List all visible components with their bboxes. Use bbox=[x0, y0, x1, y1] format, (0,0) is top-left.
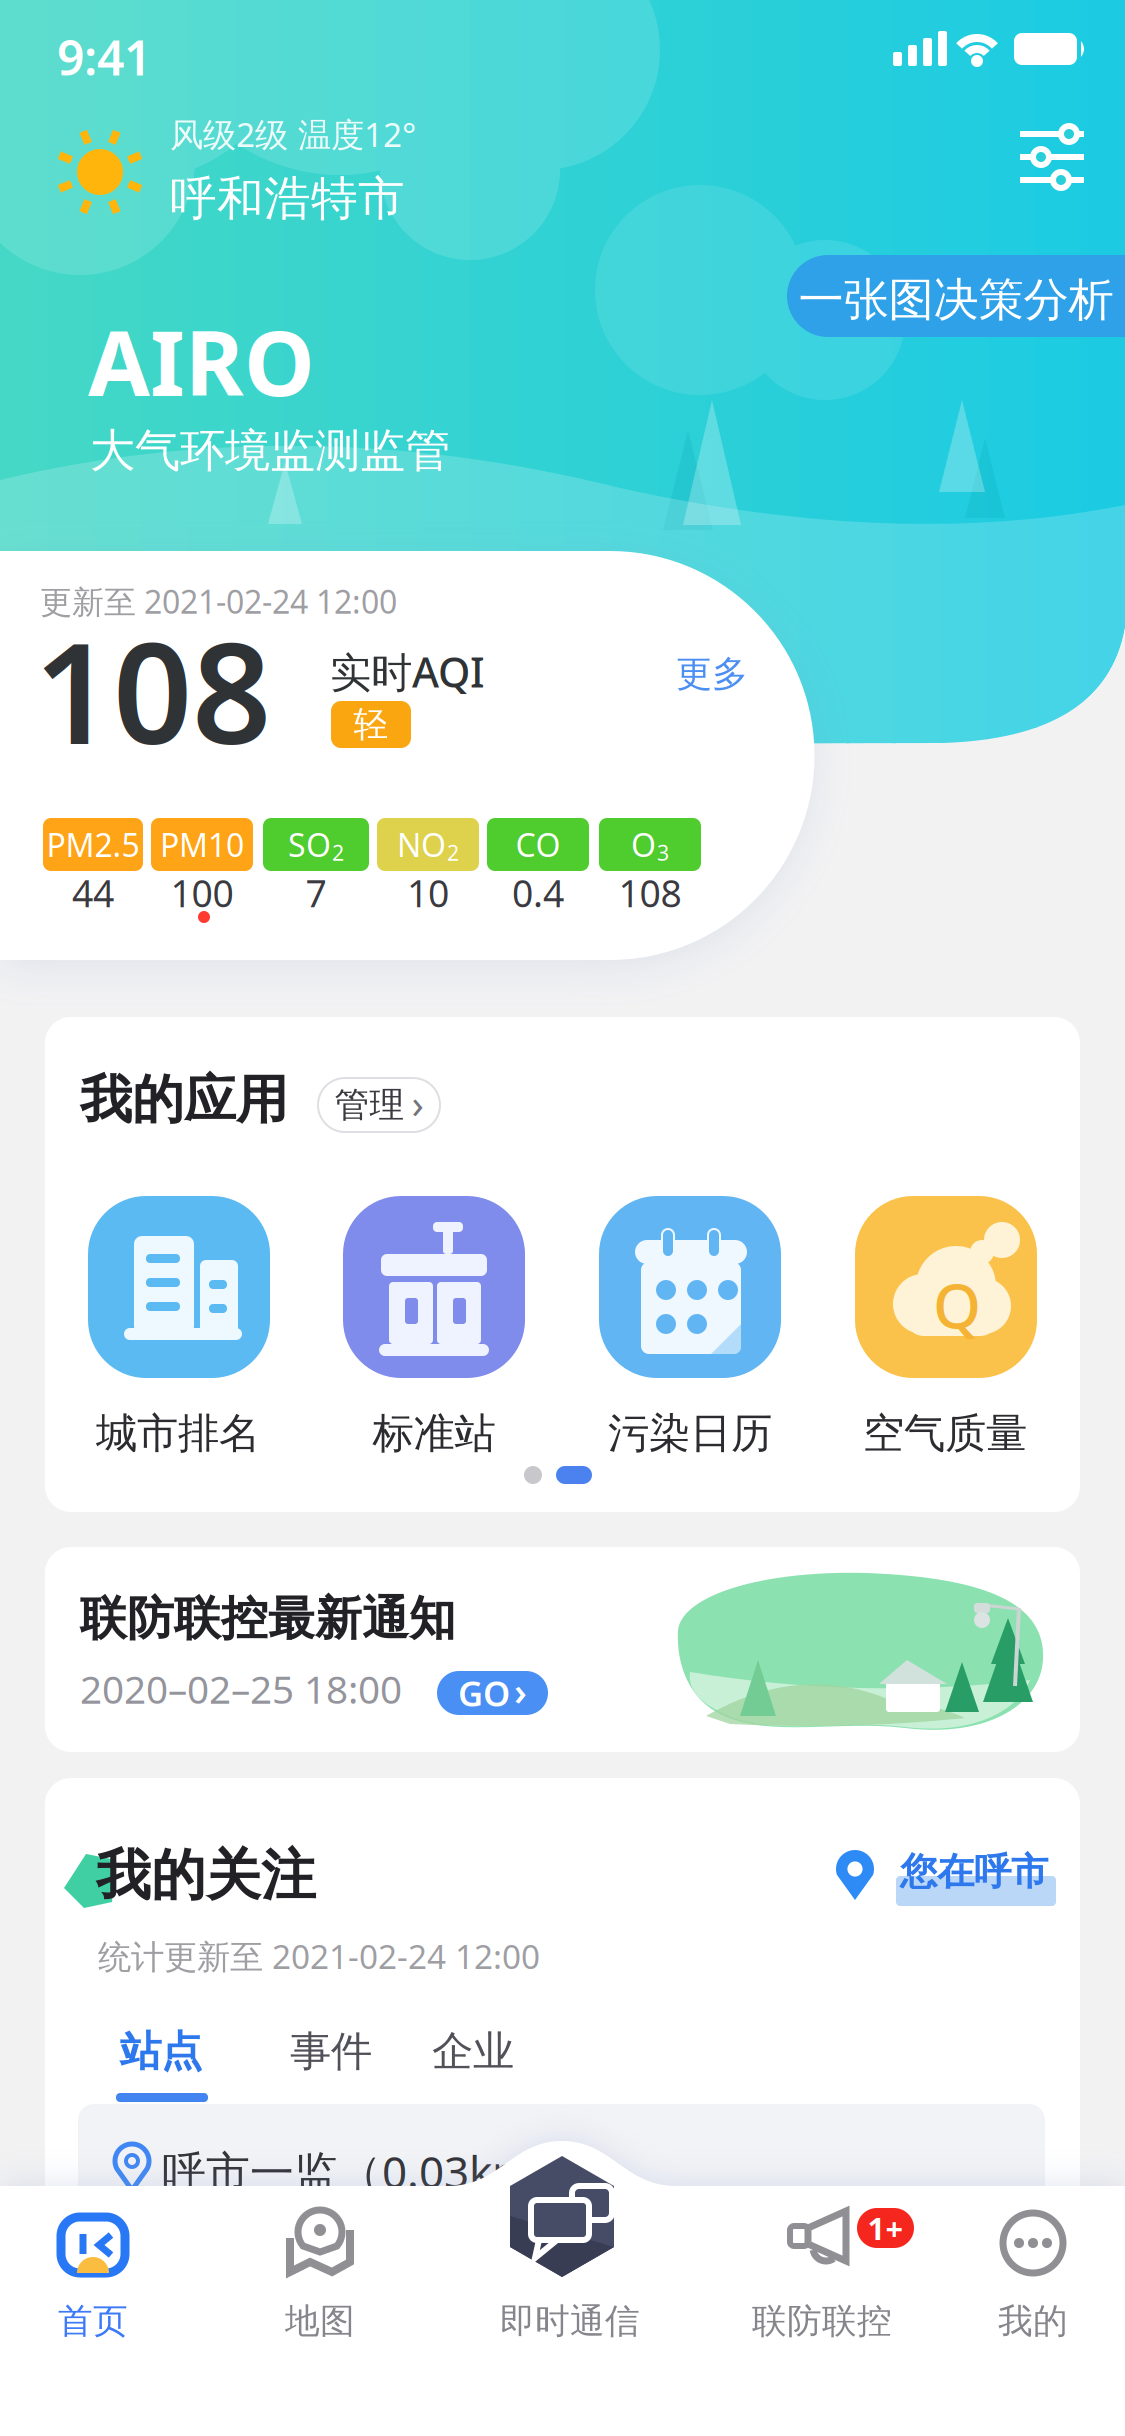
staticText: 我的应用 bbox=[80, 1068, 288, 1132]
staticText: 更新至 2021-02-24 12:00 bbox=[40, 580, 397, 622]
staticText: PM2.5 bbox=[46, 823, 139, 866]
staticText: AIRO bbox=[88, 302, 315, 421]
staticText: 0.4 bbox=[512, 868, 564, 918]
button[interactable]: 站点 bbox=[120, 2026, 202, 2077]
staticText: 2020–02–25 18:00 bbox=[80, 1663, 402, 1714]
button[interactable]: 轻 bbox=[331, 701, 411, 748]
button[interactable]: 地图 bbox=[0, 0, 1125, 2436]
staticText: 一张图决策分析 bbox=[798, 272, 1113, 328]
button[interactable]: 一张图决策分析 bbox=[0, 0, 1125, 2436]
staticText: 10 bbox=[407, 868, 449, 918]
staticText: 2 bbox=[332, 838, 344, 867]
button[interactable]: 城市排名 bbox=[88, 1196, 270, 1378]
button[interactable]: 即时通信 bbox=[0, 0, 260, 43]
staticText: 首页 bbox=[58, 2300, 128, 2343]
staticText: CO bbox=[515, 823, 560, 866]
button[interactable]: 企业 bbox=[432, 2026, 514, 2077]
staticText: 联防联控 bbox=[752, 2300, 892, 2343]
button[interactable]: 我的 bbox=[0, 0, 1125, 2436]
staticText: 即时通信 bbox=[500, 2300, 640, 2343]
staticText: 城市排名 bbox=[96, 1408, 260, 1459]
staticText: 100 bbox=[170, 868, 233, 918]
staticText: 我的关注 bbox=[96, 1842, 316, 1909]
staticText: 事件 bbox=[290, 2026, 372, 2077]
button[interactable]: 管理 bbox=[318, 1078, 440, 1132]
staticText: 地图 bbox=[285, 2300, 355, 2343]
staticText: 呼和浩特市 bbox=[170, 170, 405, 227]
staticText: 1+ bbox=[867, 2208, 903, 2248]
staticText: 我的 bbox=[998, 2300, 1068, 2343]
staticText: 污染日历 bbox=[608, 1408, 772, 1459]
staticText: › bbox=[514, 1666, 527, 1716]
staticText: 44 bbox=[72, 868, 114, 918]
staticText: 7 bbox=[305, 868, 326, 918]
button[interactable]: 联防联控 bbox=[0, 0, 1125, 2436]
staticText: 更多 bbox=[676, 652, 748, 696]
staticText: GO bbox=[458, 1670, 510, 1716]
button[interactable]: 首页 bbox=[0, 0, 1125, 2436]
button[interactable]: 联防联控最新通知 bbox=[0, 0, 1125, 2436]
staticText: SO bbox=[288, 823, 331, 866]
staticText: 联防联控最新通知 bbox=[80, 1590, 456, 1647]
staticText: 空气质量 bbox=[863, 1408, 1027, 1459]
button[interactable]: 标准站 bbox=[343, 1196, 525, 1378]
staticText: 轻 bbox=[353, 703, 388, 746]
staticText: 呼市一监（0.03km） bbox=[162, 2142, 577, 2200]
button[interactable]: 更多 bbox=[676, 652, 748, 696]
button[interactable]: 即时通信 bbox=[0, 0, 1125, 2436]
button[interactable]: 事件 bbox=[290, 2026, 372, 2077]
staticText: 管理 bbox=[334, 1084, 404, 1126]
staticText: 3 bbox=[657, 838, 669, 867]
staticText: Q bbox=[933, 1264, 981, 1345]
staticText: 108 bbox=[34, 598, 271, 782]
staticText: 站点 bbox=[120, 2026, 202, 2077]
staticText: 108 bbox=[618, 868, 681, 918]
staticText: › bbox=[411, 1076, 423, 1129]
staticText: 风级2级 温度12° bbox=[170, 112, 416, 156]
staticText: 企业 bbox=[432, 2026, 514, 2077]
staticText: 大气环境监测监管 bbox=[90, 423, 450, 479]
staticText: NO bbox=[397, 823, 446, 866]
button[interactable]: 您在呼市 bbox=[0, 0, 1125, 2436]
button[interactable]: 筛选设置 bbox=[0, 0, 1125, 2436]
staticText: O bbox=[631, 823, 656, 866]
staticText: 您在呼市 bbox=[900, 1849, 1048, 1895]
button[interactable]: 呼市一监（0.03km） bbox=[78, 2104, 1045, 2224]
button[interactable]: 空气质量 bbox=[855, 1196, 1037, 1378]
button[interactable]: 污染日历 bbox=[599, 1196, 781, 1378]
staticText: PM10 bbox=[160, 823, 244, 866]
staticText: 2 bbox=[447, 838, 459, 867]
staticText: 9:41 bbox=[57, 25, 151, 89]
staticText: 统计更新至 2021-02-24 12:00 bbox=[98, 1934, 540, 1978]
staticText: 标准站 bbox=[372, 1408, 495, 1459]
staticText: 实时AQI bbox=[330, 644, 485, 699]
